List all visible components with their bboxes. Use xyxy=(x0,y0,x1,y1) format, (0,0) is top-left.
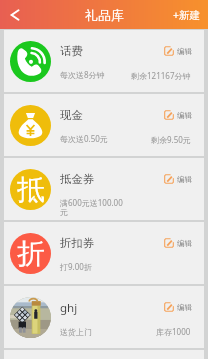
staticText: 现金 xyxy=(60,108,83,122)
button[interactable]: 编辑 xyxy=(164,46,192,56)
button[interactable]: ghj xyxy=(4,286,204,348)
staticText: 编辑 xyxy=(177,239,192,248)
staticText: 每次送0.50元 xyxy=(60,133,108,144)
button[interactable]: 编辑 xyxy=(164,302,192,312)
staticText: 折 xyxy=(17,236,45,271)
staticText: 话费 xyxy=(60,44,83,58)
button[interactable]: 编辑 xyxy=(164,110,192,120)
staticText: 送货上门 xyxy=(60,327,92,337)
button[interactable]: 编辑 xyxy=(164,238,192,248)
button[interactable]: Back xyxy=(0,0,30,29)
staticText: 满600元送100.00元 xyxy=(60,197,126,218)
button[interactable]: 编辑 xyxy=(164,174,192,184)
staticText: 抵 xyxy=(17,172,45,207)
staticText: +新建 xyxy=(173,8,201,22)
button[interactable]: +新建 xyxy=(165,0,208,29)
staticText: 编辑 xyxy=(177,175,192,184)
staticText: 剩余121167分钟 xyxy=(131,70,191,81)
staticText: 折扣券 xyxy=(60,236,95,250)
staticText: ghj xyxy=(60,300,78,316)
button[interactable]: 现金 xyxy=(4,94,204,156)
staticText: 库存1000 xyxy=(156,326,191,337)
staticText: 剩余9.50元 xyxy=(151,134,191,145)
staticText: 打9.00折 xyxy=(60,261,92,272)
staticText: 礼品库 xyxy=(85,7,124,23)
staticText: 编辑 xyxy=(177,111,192,120)
staticText: 抵金券 xyxy=(60,172,95,186)
button[interactable]: 话费 xyxy=(4,30,204,92)
staticText: 每次送8分钟 xyxy=(60,69,105,80)
staticText: 编辑 xyxy=(177,47,192,56)
staticText: 编辑 xyxy=(177,303,192,312)
button[interactable]: 抵 xyxy=(4,158,204,220)
button[interactable]: 折 xyxy=(4,222,204,284)
